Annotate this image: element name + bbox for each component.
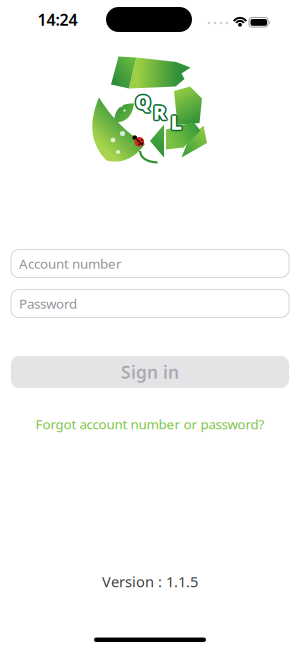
staticText: R xyxy=(154,98,168,124)
staticText: Sign in xyxy=(121,360,179,383)
staticText: Q xyxy=(134,87,150,114)
button[interactable]: Password xyxy=(11,289,289,317)
staticText: R xyxy=(154,100,168,126)
staticText: R xyxy=(151,99,165,125)
staticText: Q xyxy=(135,87,151,113)
button[interactable]: Forgot account number or password? xyxy=(35,415,264,433)
staticText: Q xyxy=(135,90,151,116)
staticText: R xyxy=(152,98,166,124)
staticText: L xyxy=(170,109,182,135)
staticText: Q xyxy=(136,88,152,115)
staticText: R xyxy=(153,97,167,124)
staticText: L xyxy=(172,108,184,134)
staticText: R xyxy=(153,100,167,127)
staticText: L xyxy=(170,107,182,134)
staticText: Q xyxy=(136,87,152,114)
staticText: Q xyxy=(136,89,152,116)
staticText: Password xyxy=(19,295,77,312)
staticText: Q xyxy=(135,88,151,115)
staticText: R xyxy=(153,99,167,125)
staticText: R xyxy=(154,99,168,125)
button[interactable]: Sign in xyxy=(11,356,289,388)
staticText: L xyxy=(169,108,181,134)
staticText: Q xyxy=(134,89,150,116)
staticText: L xyxy=(172,110,184,136)
staticText: L xyxy=(172,109,184,135)
staticText: Account number xyxy=(19,255,122,272)
staticText: Forgot account number or password? xyxy=(35,415,264,433)
staticText: L xyxy=(169,110,181,136)
staticText: Version : 1.1.5 xyxy=(102,572,198,591)
staticText: R xyxy=(152,100,166,126)
staticText: Q xyxy=(133,88,149,115)
staticText: 14:24 xyxy=(37,9,77,30)
staticText: L xyxy=(169,109,181,135)
button[interactable]: Account number xyxy=(11,249,289,277)
staticText: L xyxy=(170,110,182,137)
